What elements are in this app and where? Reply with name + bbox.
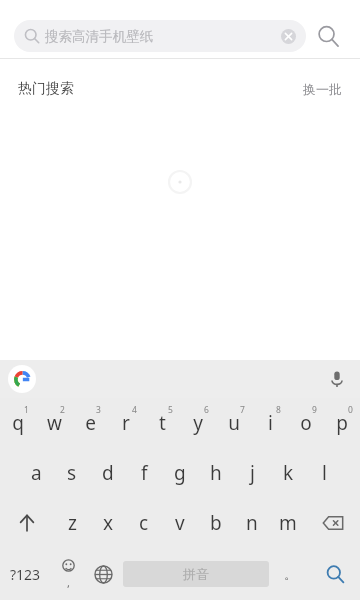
button[interactable]: x (90, 498, 126, 548)
button[interactable]: p (324, 398, 360, 448)
button[interactable]: 。 (271, 548, 309, 600)
staticText: a (31, 460, 42, 486)
staticText: y (193, 410, 203, 436)
staticText: h (210, 460, 222, 486)
staticText: g (174, 460, 186, 486)
staticText: 9 (312, 404, 317, 416)
staticText: o (300, 410, 312, 436)
staticText: q (12, 410, 24, 436)
button[interactable]: b (198, 498, 234, 548)
button[interactable]: 搜索高清手机壁纸 (14, 20, 306, 52)
staticText: 换一批 (303, 81, 342, 97)
staticText: 热门搜索 (18, 80, 74, 98)
staticText: f (141, 460, 148, 486)
staticText: d (102, 460, 114, 486)
button[interactable]: e (72, 398, 108, 448)
button[interactable]: i (252, 398, 288, 448)
staticText: p (336, 410, 348, 436)
staticText: 0 (348, 404, 353, 416)
button[interactable]: c (126, 498, 162, 548)
staticText: 8 (276, 404, 281, 416)
staticText: 7 (240, 404, 245, 416)
button[interactable]: r (108, 398, 144, 448)
button[interactable]: t (144, 398, 180, 448)
button[interactable]: 清除 (278, 26, 298, 46)
button[interactable]: j (234, 448, 270, 498)
staticText: c (139, 510, 149, 536)
button[interactable]: k (270, 448, 306, 498)
button[interactable]: Shift (0, 498, 54, 548)
button[interactable]: n (234, 498, 270, 548)
staticText: 拼音 (183, 566, 209, 582)
staticText: 6 (204, 404, 209, 416)
staticText: 。 (284, 566, 297, 582)
button[interactable]: q (0, 398, 36, 448)
button[interactable]: y (180, 398, 216, 448)
staticText: r (122, 410, 130, 436)
staticText: e (85, 410, 96, 436)
button[interactable]: h (198, 448, 234, 498)
button[interactable]: f (126, 448, 162, 498)
button[interactable]: 拼音 (123, 561, 269, 587)
button[interactable]: o (288, 398, 324, 448)
staticText: z (68, 510, 77, 536)
button[interactable]: w (36, 398, 72, 448)
staticText: m (279, 510, 297, 536)
button[interactable]: 切换语言 (86, 548, 121, 600)
staticText: t (159, 410, 166, 436)
staticText: u (228, 410, 240, 436)
staticText: 4 (132, 404, 137, 416)
button[interactable]: a (18, 448, 54, 498)
button[interactable]: m (270, 498, 306, 548)
staticText: v (175, 510, 185, 536)
button[interactable]: v (162, 498, 198, 548)
staticText: 1 (24, 404, 29, 416)
button[interactable]: 语音输入 (322, 364, 352, 394)
button[interactable]: z (54, 498, 90, 548)
button[interactable]: l (306, 448, 342, 498)
staticText: 2 (60, 404, 65, 416)
button[interactable]: d (90, 448, 126, 498)
staticText: , (67, 575, 70, 590)
staticText: 搜索高清手机壁纸 (45, 28, 153, 45)
button[interactable]: 表情 (51, 548, 86, 600)
staticText: b (210, 510, 222, 536)
staticText: 3 (96, 404, 101, 416)
staticText: n (246, 510, 258, 536)
staticText: w (47, 410, 62, 436)
button[interactable]: 搜索 (306, 14, 350, 58)
button[interactable]: u (216, 398, 252, 448)
staticText: ?123 (10, 565, 41, 584)
staticText: l (322, 460, 327, 486)
staticText: i (268, 410, 273, 436)
button[interactable]: Google (8, 365, 36, 393)
staticText: x (103, 510, 114, 536)
staticText: 5 (168, 404, 173, 416)
button[interactable]: g (162, 448, 198, 498)
button[interactable]: 搜索 (309, 548, 360, 600)
staticText: s (67, 460, 77, 486)
button[interactable]: ?123 (0, 548, 51, 600)
staticText: j (250, 460, 255, 486)
button[interactable]: s (54, 448, 90, 498)
button[interactable]: 退格 (306, 498, 360, 548)
staticText: k (283, 460, 294, 486)
button[interactable]: 换一批 (303, 81, 342, 97)
